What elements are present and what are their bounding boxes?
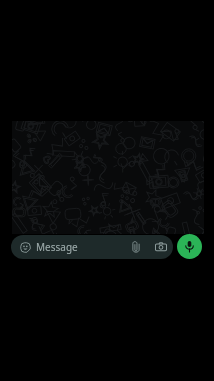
button[interactable]: Emoji	[11, 235, 173, 259]
button[interactable]: Voice message	[177, 234, 202, 259]
other: Attach	[130, 241, 142, 253]
other: Camera	[155, 241, 167, 253]
other: Emoji	[20, 242, 31, 253]
staticText: Message	[36, 240, 78, 254]
